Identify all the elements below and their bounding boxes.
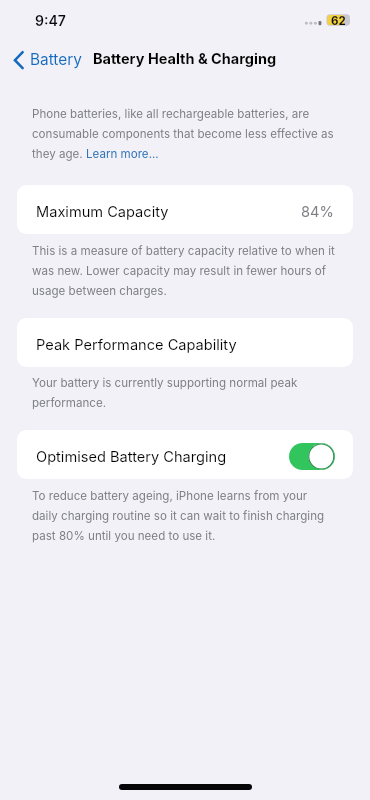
staticText: Battery — [30, 50, 82, 69]
staticText: past 80% until you need to use it. — [32, 529, 216, 543]
staticText: performance. — [32, 396, 107, 410]
staticText: 62 — [331, 14, 346, 28]
staticText: Optimised Battery Charging — [36, 448, 227, 466]
staticText: they age. — [32, 147, 86, 161]
staticText: This is a measure of battery capacity re… — [32, 244, 335, 258]
staticText: Learn more... — [86, 147, 159, 161]
staticText: Battery Health & Charging — [93, 50, 277, 68]
staticText: Maximum Capacity — [36, 203, 169, 221]
button[interactable]: Optimised Battery Charging toggle — [289, 443, 335, 470]
staticText: usage between charges. — [32, 284, 167, 298]
staticText: was new. Lower capacity may result in fe… — [32, 264, 327, 278]
staticText: 9:47 — [35, 12, 66, 29]
staticText: 84% — [301, 203, 334, 221]
button[interactable]: Learn more... — [86, 144, 159, 164]
button[interactable]: Peak Performance Capability — [17, 318, 353, 367]
button[interactable]: Back to Battery — [12, 46, 82, 72]
staticText: daily charging routine so it can wait to… — [32, 509, 325, 523]
staticText: Peak Performance Capability — [36, 336, 237, 354]
button[interactable]: Maximum Capacity — [17, 185, 353, 234]
button[interactable]: Optimised Battery Charging — [17, 430, 353, 479]
staticText: consumable components that become less e… — [32, 127, 334, 141]
staticText: Phone batteries, like all rechargeable b… — [32, 107, 310, 121]
staticText: Your battery is currently supporting nor… — [32, 376, 298, 390]
staticText: To reduce battery ageing, iPhone learns … — [32, 489, 308, 503]
